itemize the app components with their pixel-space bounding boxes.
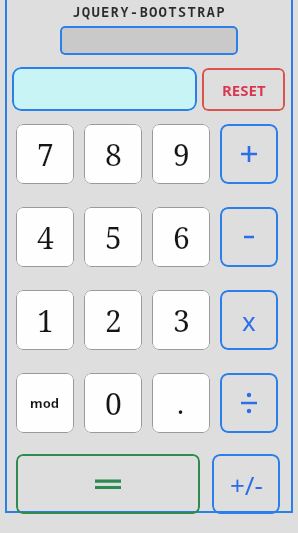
button[interactable]: 9 — [152, 124, 210, 184]
staticText: 3 — [173, 300, 190, 341]
button[interactable]: 8 — [84, 124, 142, 184]
button[interactable]: Equals — [16, 454, 200, 514]
button[interactable]: 7 — [16, 124, 74, 184]
staticText: 7 — [37, 134, 54, 175]
button[interactable]: 4 — [16, 207, 74, 267]
button[interactable] — [60, 26, 238, 55]
button[interactable] — [12, 67, 197, 111]
button[interactable]: Multiply — [220, 290, 278, 350]
button[interactable]: Divide — [220, 373, 278, 433]
button[interactable]: 6 — [152, 207, 210, 267]
staticText: JQUERY-BOOTSTRAP — [72, 2, 226, 21]
button[interactable]: 5 — [84, 207, 142, 267]
button[interactable]: Plus minus sign — [212, 454, 280, 514]
button[interactable]: . — [152, 373, 210, 433]
staticText: 9 — [173, 134, 190, 175]
button[interactable]: 1 — [16, 290, 74, 350]
staticText: +/- — [230, 467, 263, 502]
staticText: 4 — [37, 217, 54, 258]
button[interactable]: Add — [220, 124, 278, 184]
button[interactable]: 2 — [84, 290, 142, 350]
staticText: . — [177, 384, 185, 422]
staticText: mod — [30, 394, 60, 412]
staticText: RESET — [222, 80, 266, 100]
staticText: 8 — [105, 134, 122, 175]
staticText: 2 — [105, 300, 122, 341]
staticText: 6 — [173, 217, 190, 258]
staticText: 1 — [37, 300, 54, 341]
staticText: 5 — [105, 217, 122, 258]
button[interactable]: 3 — [152, 290, 210, 350]
button[interactable]: 0 — [84, 373, 142, 433]
button[interactable]: Subtract — [220, 207, 278, 267]
button[interactable]: mod — [16, 373, 74, 433]
staticText: x — [242, 303, 256, 338]
staticText: 0 — [105, 383, 122, 424]
button[interactable]: RESET — [202, 68, 285, 111]
